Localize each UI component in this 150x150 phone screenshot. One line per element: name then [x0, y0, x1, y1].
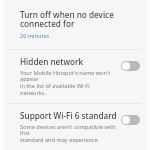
- button[interactable]: Hidden network toggle: [121, 61, 140, 71]
- button[interactable]: Support Wi-Fi 6 standard toggle: [121, 115, 140, 125]
- staticText: Turn off when no device connected for: [20, 9, 138, 30]
- staticText: Hidden network: [20, 56, 84, 67]
- button[interactable]: Hidden network: [4, 50, 146, 103]
- button[interactable]: Turn off when no device connected for: [4, 0, 146, 49]
- staticText: 20 minutes: [20, 32, 50, 40]
- staticText: Your Mobile Hotspot's name won't appear …: [20, 69, 117, 97]
- button[interactable]: Support Wi-Fi 6 standard: [4, 104, 146, 150]
- staticText: Support Wi-Fi 6 standard: [20, 110, 117, 121]
- staticText: Some devices aren't compatible with this…: [20, 123, 117, 144]
